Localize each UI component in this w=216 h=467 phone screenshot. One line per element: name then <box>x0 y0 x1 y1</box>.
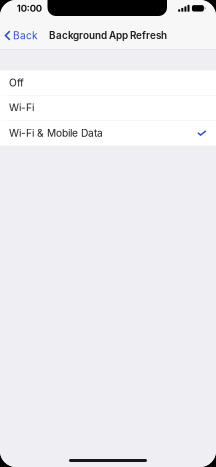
button[interactable]: Off <box>0 70 216 95</box>
button[interactable]: Back <box>0 22 45 49</box>
staticText: Back <box>13 29 38 42</box>
button[interactable]: Wi-Fi <box>0 95 216 120</box>
staticText: Wi-Fi & Mobile Data <box>9 127 103 139</box>
button[interactable]: Wi-Fi & Mobile Data <box>0 120 216 145</box>
staticText: Off <box>9 77 24 89</box>
staticText: 10:00 <box>17 2 42 14</box>
staticText: Wi-Fi <box>9 102 34 114</box>
staticText: Background App Refresh <box>49 29 167 41</box>
